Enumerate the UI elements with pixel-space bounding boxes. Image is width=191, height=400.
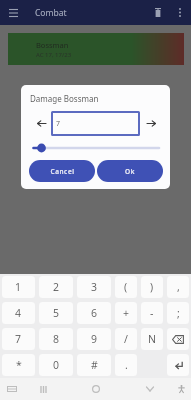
button[interactable]: 7 xyxy=(51,111,140,136)
button[interactable]: 8 xyxy=(39,328,73,350)
staticText: 5 xyxy=(53,306,60,320)
staticText: , xyxy=(177,280,180,294)
staticText: N xyxy=(148,332,156,346)
button[interactable]: Open navigation menu xyxy=(0,0,26,25)
staticText: Ok xyxy=(125,167,135,176)
button[interactable]: Increase xyxy=(142,111,160,136)
staticText: Combat xyxy=(35,7,67,19)
button[interactable]: 9 xyxy=(77,328,111,350)
button[interactable]: # xyxy=(77,354,111,376)
button[interactable]: 4 xyxy=(2,302,35,324)
staticText: Damage Bossman xyxy=(30,93,99,104)
staticText: + xyxy=(123,306,130,320)
button[interactable]: Hide keyboard xyxy=(140,378,160,400)
button[interactable]: Ok xyxy=(97,160,163,182)
staticText: * xyxy=(16,358,22,372)
button[interactable]: Home xyxy=(86,378,106,400)
staticText: - xyxy=(150,306,154,320)
button[interactable]: Damage amount slider xyxy=(29,139,162,156)
staticText: 4 xyxy=(15,306,22,320)
button[interactable]: / xyxy=(115,328,137,350)
button[interactable]: 2 xyxy=(39,276,73,298)
button[interactable]: * xyxy=(2,354,35,376)
staticText: 7 xyxy=(15,332,22,346)
button[interactable]: Enter xyxy=(167,354,189,376)
button[interactable]: , xyxy=(167,276,189,298)
staticText: ) xyxy=(150,280,154,294)
button[interactable]: 0 xyxy=(39,354,73,376)
button[interactable]: Delete xyxy=(147,0,169,25)
button[interactable]: + xyxy=(115,302,137,324)
staticText: 7 xyxy=(56,119,61,129)
staticText: 9 xyxy=(91,332,98,346)
button[interactable]: Bossman xyxy=(8,33,184,65)
button[interactable]: 1 xyxy=(2,276,35,298)
staticText: ( xyxy=(124,280,128,294)
button[interactable]: Backspace xyxy=(167,328,189,350)
button[interactable]: Recent apps xyxy=(33,378,53,400)
button[interactable]: Accessibility xyxy=(171,378,191,400)
staticText: . xyxy=(125,358,128,372)
button[interactable]: 5 xyxy=(39,302,73,324)
button[interactable]: Decrease xyxy=(32,111,50,136)
button[interactable]: ( xyxy=(115,276,137,298)
button[interactable]: 3 xyxy=(77,276,111,298)
staticText: # xyxy=(91,358,98,372)
staticText: 0 xyxy=(53,358,60,372)
button[interactable]: ) xyxy=(141,276,163,298)
button[interactable]: N xyxy=(141,328,163,350)
button[interactable]: More options xyxy=(169,0,191,25)
staticText: 8 xyxy=(53,332,60,346)
staticText: 6 xyxy=(91,306,98,320)
staticText: 1 xyxy=(15,280,22,294)
button[interactable]: . xyxy=(115,354,137,376)
button[interactable]: ; xyxy=(167,302,189,324)
button[interactable]: - xyxy=(141,302,163,324)
staticText: Bossman xyxy=(36,40,69,50)
staticText: AC 17, 17/23 xyxy=(36,51,72,59)
staticText: 3 xyxy=(91,280,98,294)
staticText: / xyxy=(124,332,128,346)
button[interactable]: Switch keyboard xyxy=(2,378,22,400)
button[interactable]: 7 xyxy=(2,328,35,350)
staticText: Cancel xyxy=(50,167,75,176)
staticText: 2 xyxy=(53,280,60,294)
staticText: ; xyxy=(177,306,180,320)
button[interactable]: Cancel xyxy=(29,160,95,182)
button[interactable]: 6 xyxy=(77,302,111,324)
